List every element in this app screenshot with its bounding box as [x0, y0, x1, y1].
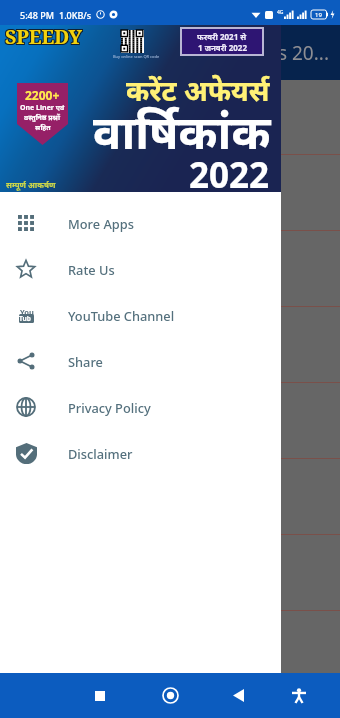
staticText: SPEEDY	[5, 23, 83, 50]
staticText: 2200+	[25, 87, 60, 103]
button[interactable]: Share	[0, 338, 281, 384]
staticText: 2022	[189, 151, 270, 199]
staticText: करेंट अफेयर्स	[126, 71, 270, 109]
staticText: More Apps	[68, 215, 134, 232]
staticText: Current Affairs 20...	[156, 40, 329, 66]
staticText: Share	[68, 353, 103, 370]
staticText: Disclaimer	[68, 445, 133, 462]
button[interactable]: Disclaimer	[0, 430, 281, 476]
button[interactable]: More Apps	[0, 200, 281, 246]
staticText: 1 जनवरी 2022	[198, 42, 247, 53]
staticText: Rate Us	[68, 261, 115, 278]
staticText: SPEEDY	[6, 24, 84, 51]
button[interactable]: Home	[152, 673, 189, 718]
staticText: YouTube Channel	[68, 307, 175, 324]
staticText: SPEEDY	[4, 23, 82, 50]
button[interactable]: Rate Us	[0, 246, 281, 292]
staticText: SPEEDY	[4, 22, 82, 49]
staticText: सम्पूर्ण आकर्षण	[6, 179, 56, 190]
staticText: You	[20, 307, 34, 315]
staticText: Privacy Policy	[68, 399, 151, 416]
staticText: One Liner एवं	[20, 103, 65, 113]
staticText: Buy online scan QR code	[113, 54, 160, 59]
staticText: SPEEDY	[6, 23, 84, 50]
staticText: 1.0KB/s	[59, 9, 92, 21]
staticText: 19	[315, 11, 322, 19]
staticText: SPEEDY	[6, 22, 84, 49]
button[interactable]: You	[0, 292, 281, 338]
staticText: 5:48 PM	[20, 9, 54, 21]
staticText: SPEEDY	[5, 24, 83, 51]
button[interactable]: Back	[220, 673, 257, 718]
button[interactable]: Accessibility	[280, 673, 317, 718]
button[interactable]: Privacy Policy	[0, 384, 281, 430]
staticText: 4G	[277, 9, 284, 16]
staticText: SPEEDY	[4, 24, 82, 51]
staticText: फरवरी 2021 से	[197, 31, 247, 42]
staticText: वार्षिकांक	[93, 99, 271, 163]
button[interactable]: Recent apps	[81, 673, 118, 718]
staticText: सहित	[35, 123, 51, 133]
staticText: SPEEDY	[5, 22, 83, 49]
staticText: Tube	[19, 314, 34, 323]
staticText: वस्तुनिष्ठ प्रश्नों	[24, 113, 61, 123]
